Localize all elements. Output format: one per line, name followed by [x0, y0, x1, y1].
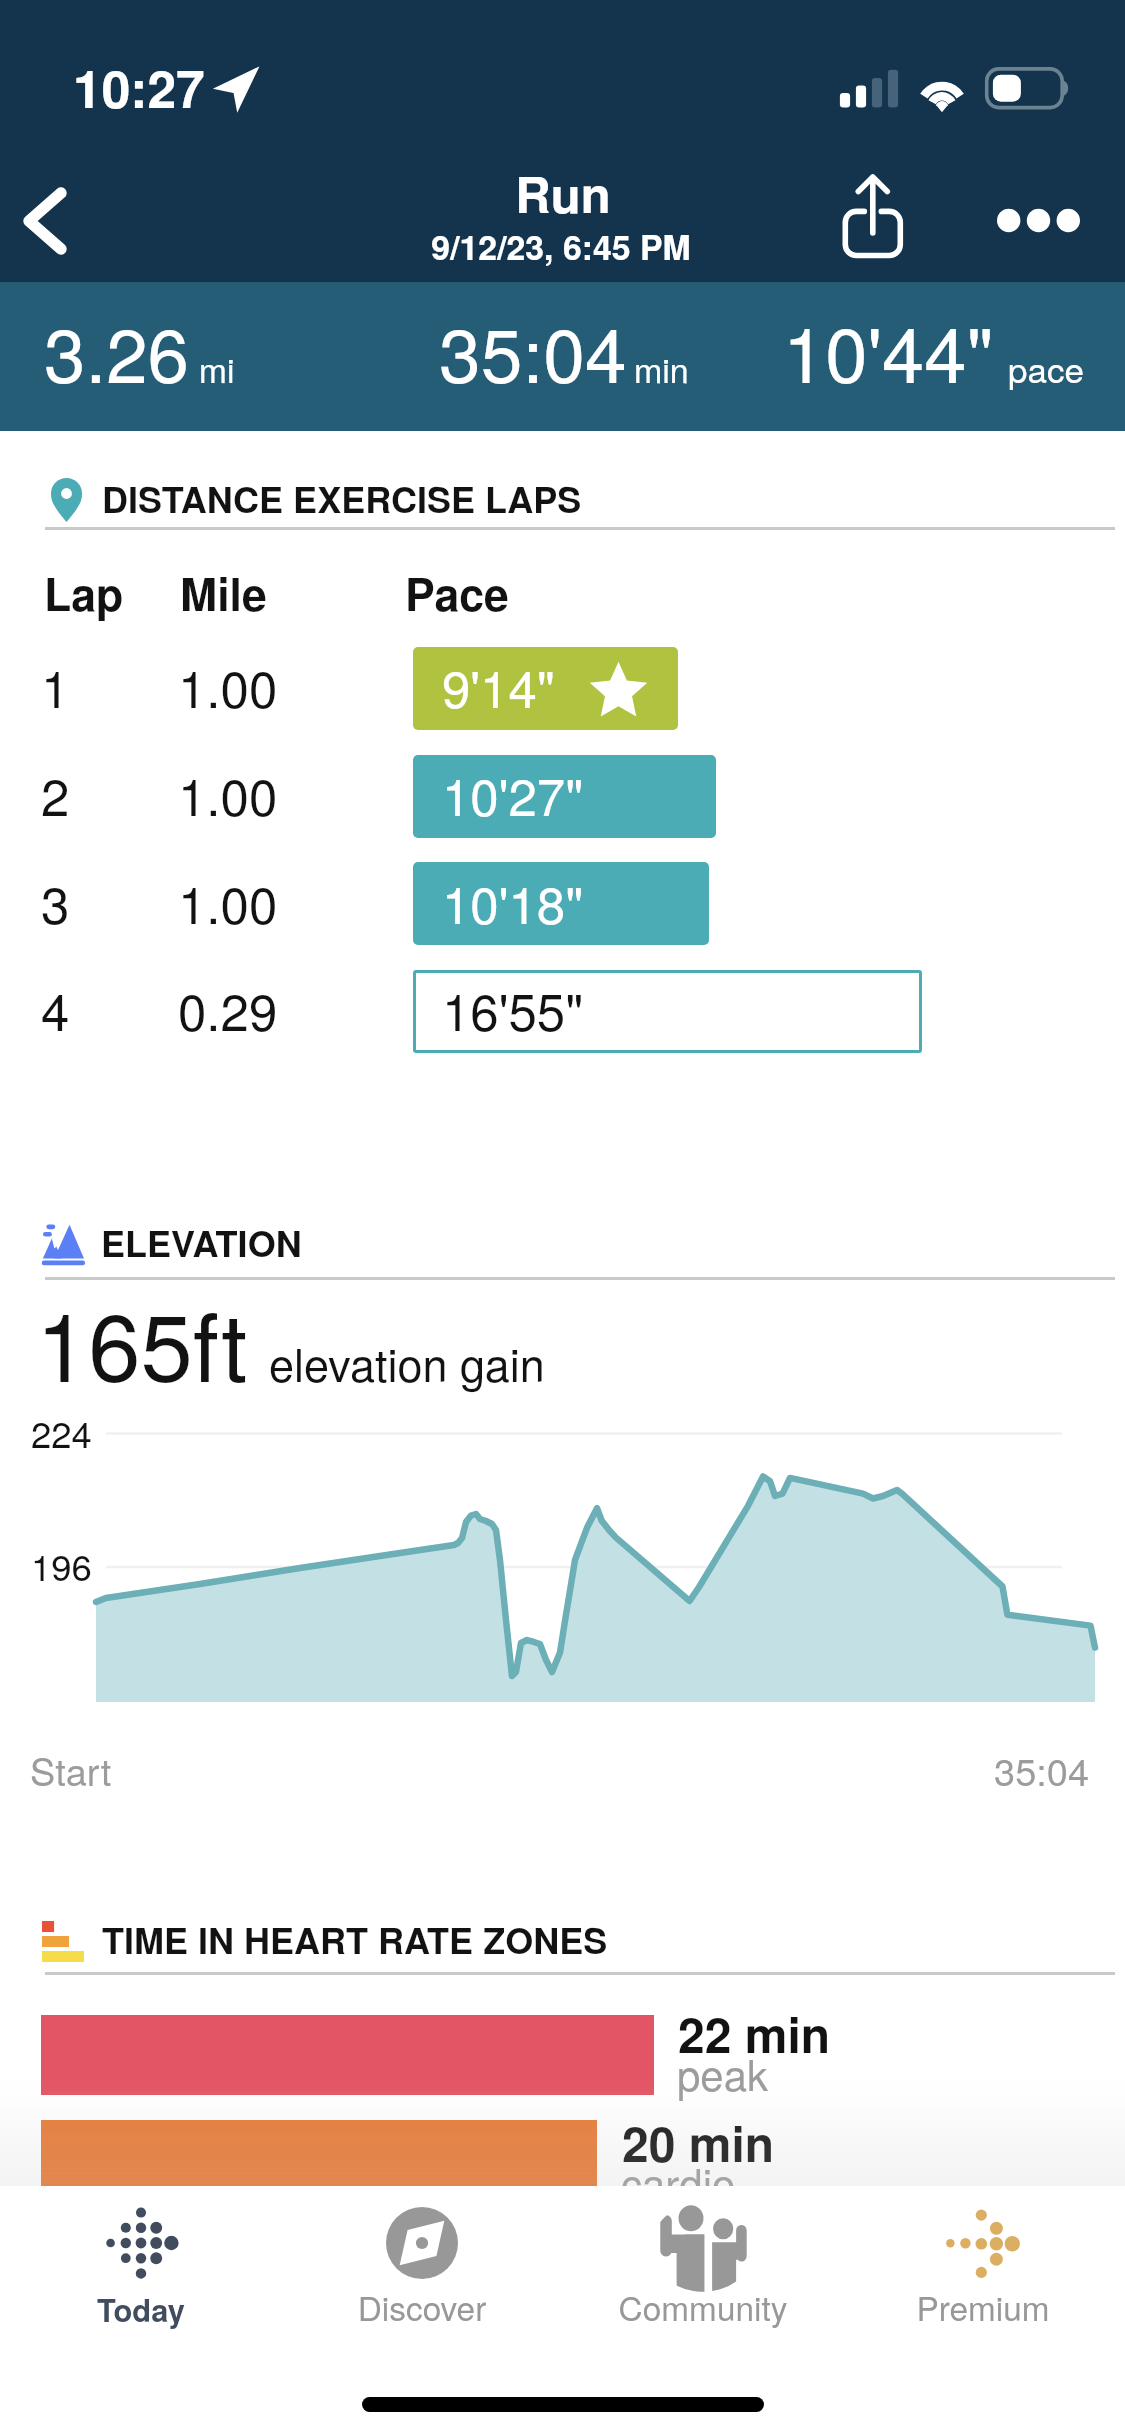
staticText: 20 min: [622, 2108, 775, 2177]
staticText: Run: [243, 158, 883, 228]
staticText: 1.00: [178, 865, 278, 938]
staticText: Lap: [44, 561, 124, 625]
staticText: Today: [0, 2287, 461, 2331]
staticText: 35:04: [994, 1742, 1090, 1796]
button[interactable]: [282, 2186, 562, 2356]
button[interactable]: [0, 2015, 1125, 2095]
staticText: 3.26: [44, 297, 189, 404]
staticText: elevation gain: [269, 1330, 545, 1394]
staticText: 196: [31, 1539, 92, 1591]
staticText: 3: [41, 865, 70, 938]
button[interactable]: [0, 743, 1125, 850]
button[interactable]: Share: [815, 160, 935, 282]
button[interactable]: [0, 850, 1125, 957]
staticText: 9/12/23, 6:45 PM: [241, 222, 881, 270]
staticText: Pace: [405, 561, 509, 625]
button[interactable]: [843, 2186, 1123, 2356]
staticText: 165ft: [36, 1274, 248, 1409]
staticText: 4: [41, 972, 70, 1045]
button[interactable]: More options: [965, 160, 1100, 282]
staticText: 16'55": [442, 972, 584, 1045]
staticText: 1.00: [178, 649, 278, 722]
staticText: peak: [677, 2043, 769, 2103]
staticText: 1: [41, 649, 70, 722]
staticText: Community: [383, 2283, 1023, 2331]
staticText: 1.00: [178, 757, 278, 830]
staticText: 0.29: [178, 972, 278, 1045]
staticText: mi: [199, 345, 235, 393]
staticText: 10'27": [442, 757, 584, 830]
button[interactable]: [0, 635, 1125, 742]
button[interactable]: [563, 2186, 843, 2356]
staticText: Premium: [663, 2283, 1125, 2331]
staticText: min: [634, 344, 689, 393]
staticText: 2: [41, 757, 70, 830]
staticText: 22 min: [678, 1999, 831, 2068]
staticText: Discover: [102, 2283, 742, 2331]
button[interactable]: Back: [0, 160, 108, 282]
staticText: pace: [1008, 343, 1084, 393]
staticText: 10'18": [442, 865, 584, 938]
staticText: 10'44": [783, 296, 994, 405]
staticText: DISTANCE EXERCISE LAPS: [102, 472, 582, 524]
button[interactable]: [0, 958, 1125, 1065]
staticText: 9'14": [442, 649, 555, 722]
button[interactable]: [1, 2186, 281, 2356]
staticText: Start: [30, 1742, 112, 1796]
staticText: Mile: [180, 561, 267, 625]
staticText: 35:04: [439, 297, 627, 404]
staticText: TIME IN HEART RATE ZONES: [102, 1913, 608, 1965]
staticText: 10:27: [73, 50, 205, 124]
staticText: ELEVATION: [101, 1216, 302, 1268]
button[interactable]: [0, 2120, 1125, 2200]
staticText: cardio: [621, 2152, 736, 2212]
staticText: 224: [31, 1406, 92, 1458]
